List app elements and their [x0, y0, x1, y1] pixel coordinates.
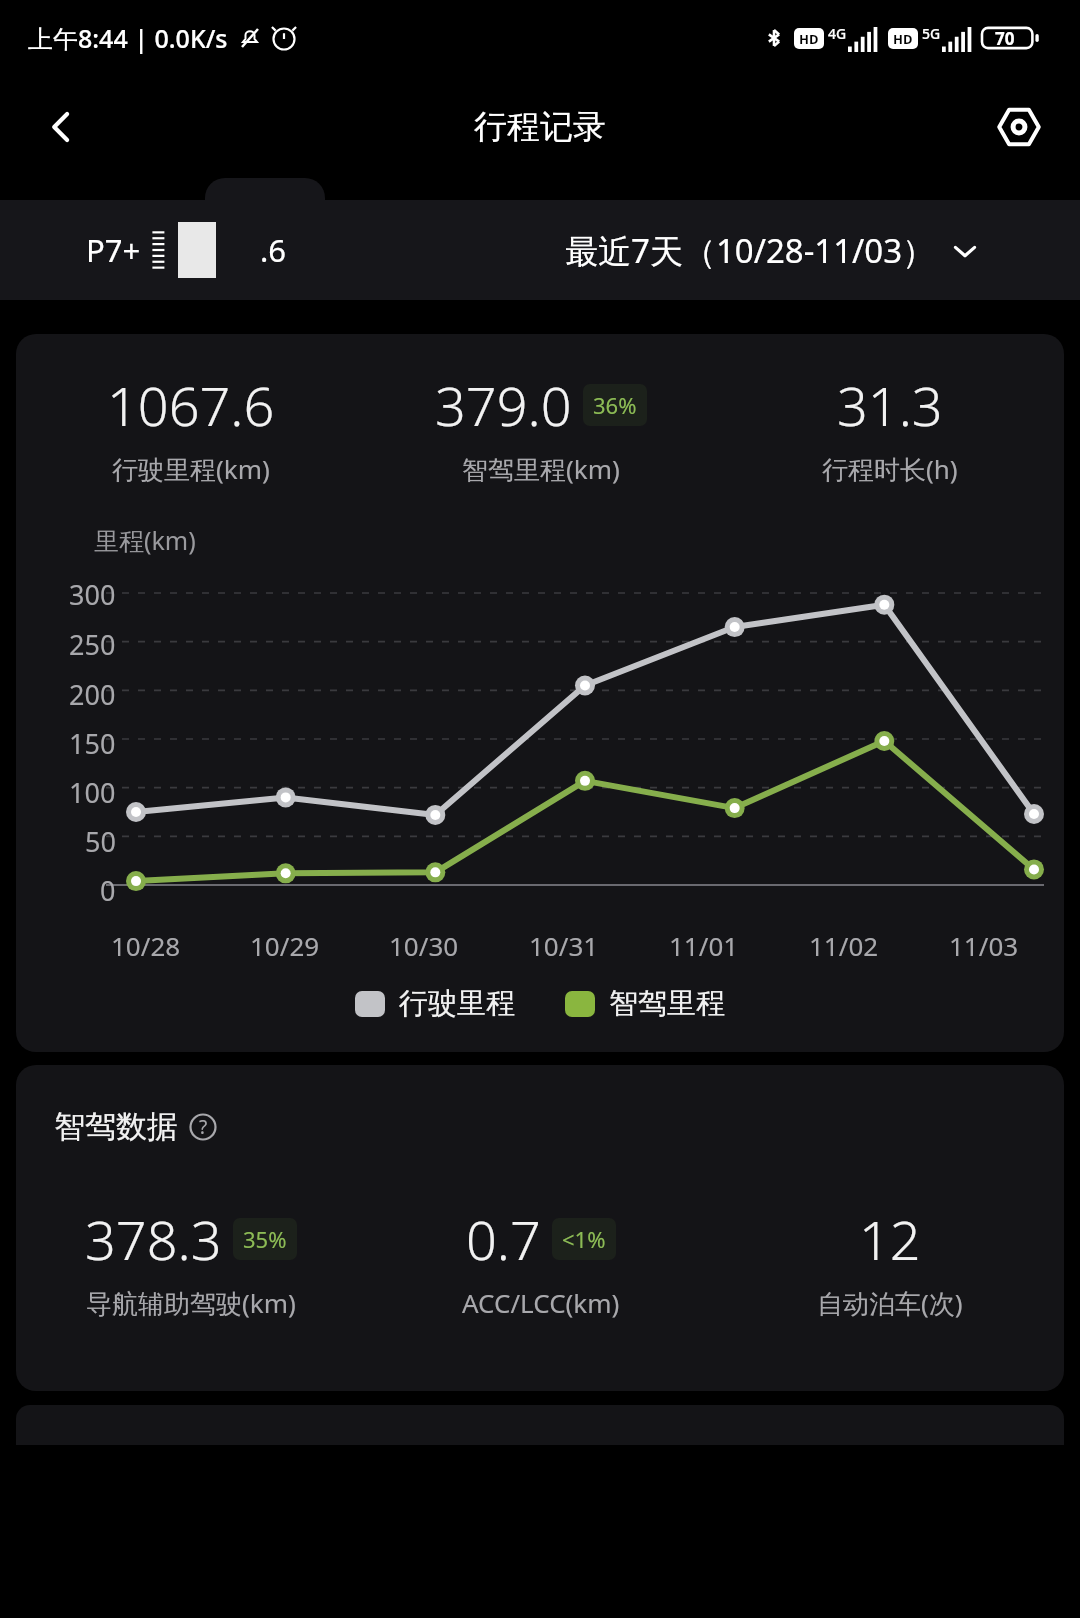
staticText: 378.3 [85, 1202, 222, 1276]
staticText: 智驾数据 [54, 1107, 178, 1146]
staticText: 最近7天（10/28-11/03） [565, 228, 936, 273]
staticText: 12 [859, 1202, 921, 1276]
staticText: 11/02 [809, 928, 879, 963]
staticText: 10/28 [111, 928, 181, 963]
staticText: 0.7 [466, 1202, 541, 1276]
staticText: 31.3 [837, 368, 943, 442]
button[interactable]: 智驾数据 [16, 1065, 1064, 1391]
button[interactable]: 最近7天（10/28-11/03） [565, 228, 980, 273]
staticText: 5G [922, 24, 941, 43]
staticText: 里程(km) [94, 523, 196, 557]
staticText: HD [893, 30, 913, 48]
staticText: ? [199, 1114, 208, 1140]
staticText: 379.0 [435, 368, 572, 442]
staticText: 自动泊车(次) [817, 1285, 963, 1321]
staticText: 100 [69, 774, 116, 811]
staticText: 300 [69, 576, 116, 613]
button[interactable]: 帮助 [186, 1110, 220, 1144]
staticText: 行程时长(h) [822, 451, 958, 487]
staticText: P7+ [86, 229, 141, 271]
staticText: 11/03 [949, 928, 1019, 963]
staticText: 35% [243, 1224, 287, 1254]
button[interactable]: P7+ [86, 222, 287, 278]
staticText: 行驶里程(km) [112, 451, 270, 487]
staticText: 10/30 [389, 928, 459, 963]
button[interactable]: 返回 [30, 96, 92, 158]
staticText: 200 [69, 676, 116, 713]
staticText: 10/29 [250, 928, 320, 963]
staticText: 上午8:44 | 0.0K/s [28, 21, 228, 55]
staticText: 50 [85, 823, 116, 860]
staticText: 11/01 [669, 928, 739, 963]
button[interactable]: 设置 [988, 96, 1050, 158]
staticText: 智驾里程 [609, 985, 725, 1022]
staticText: <1% [562, 1224, 606, 1254]
staticText: 0 [100, 872, 116, 909]
staticText: HD [799, 30, 819, 48]
staticText: 导航辅助驾驶(km) [86, 1285, 296, 1321]
staticText: .6 [260, 229, 287, 271]
staticText: 1067.6 [107, 368, 275, 442]
staticText: 智驾里程(km) [462, 451, 620, 487]
staticText: 行驶里程 [399, 985, 515, 1022]
staticText: 150 [69, 725, 116, 762]
button[interactable]: 1067.6 [16, 334, 1064, 1052]
staticText: 10/31 [529, 928, 599, 963]
staticText: 4G [828, 24, 847, 43]
staticText: 250 [69, 626, 116, 663]
staticText: 行程记录 [474, 106, 606, 148]
staticText: 36% [593, 390, 637, 420]
staticText: 70 [995, 27, 1015, 50]
staticText: ACC/LCC(km) [462, 1285, 620, 1320]
